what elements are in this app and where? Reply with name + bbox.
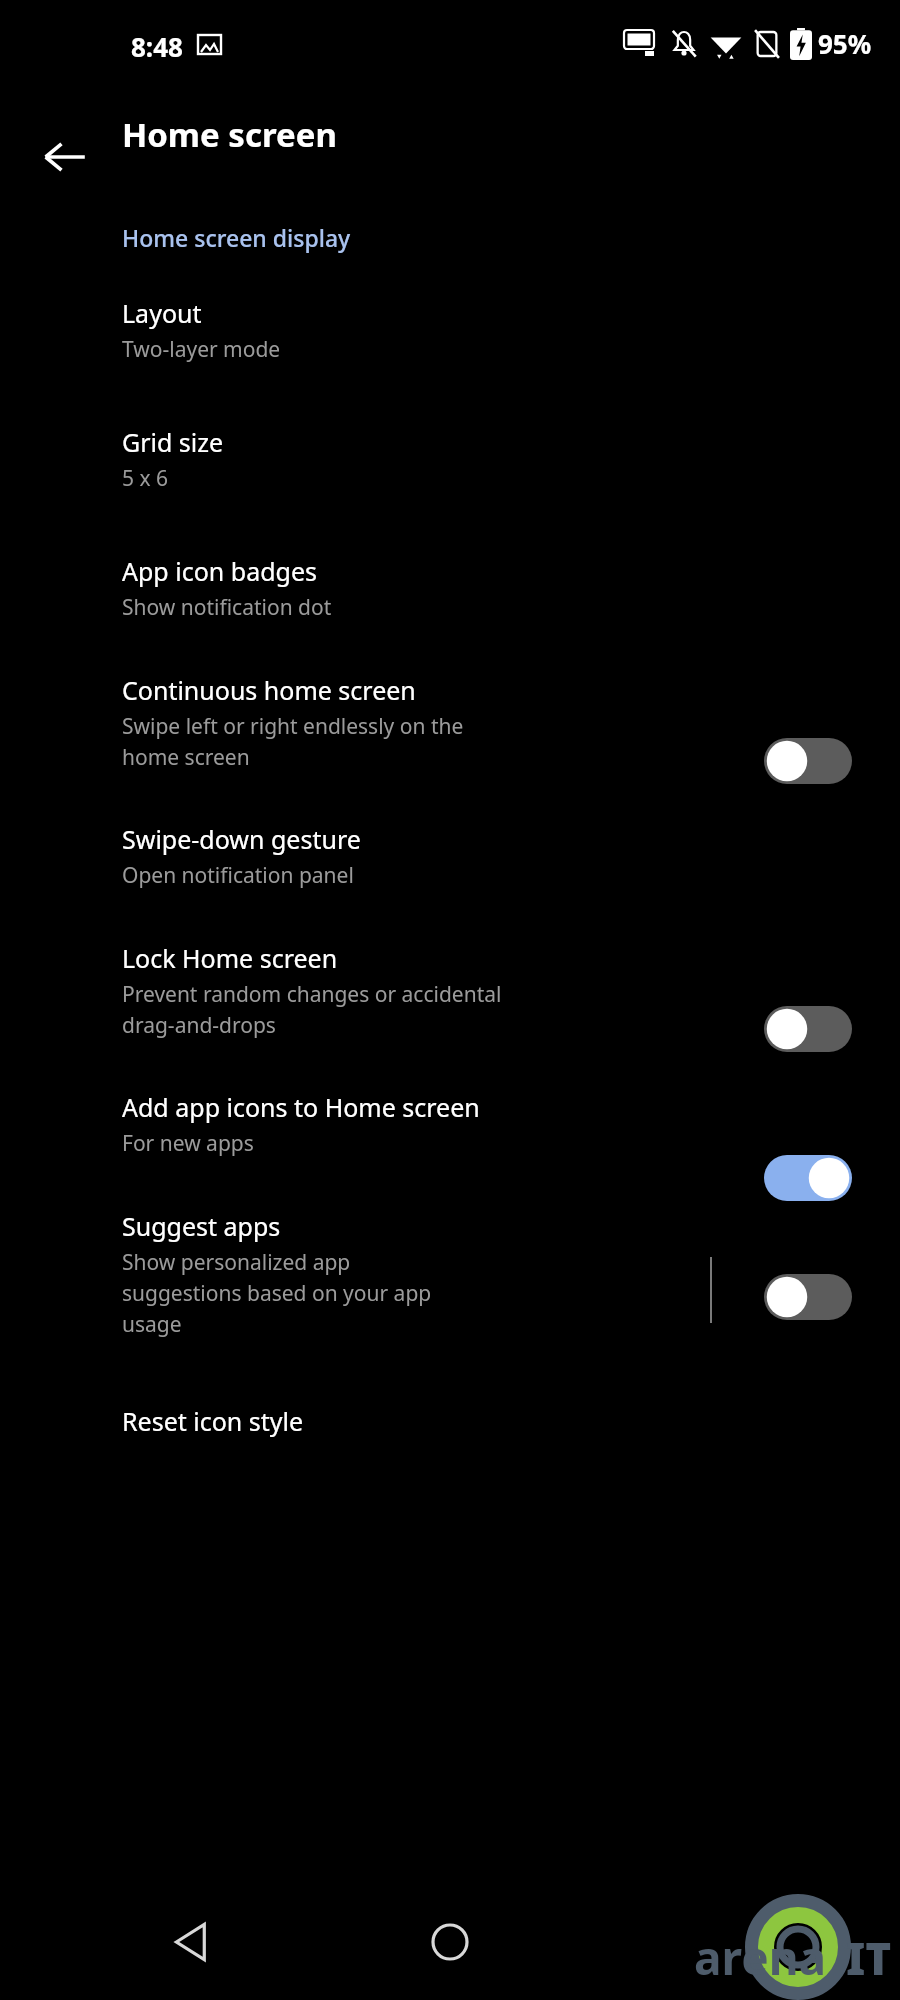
button[interactable]: Continuous home screen: [0, 673, 900, 823]
staticText: Home screen: [122, 112, 337, 157]
staticText: Lock Home screen: [122, 941, 338, 975]
staticText: Two-layer mode: [122, 335, 281, 364]
button[interactable]: Layout: [0, 296, 900, 409]
button[interactable]: On: [752, 1150, 864, 1206]
staticText: Open notification panel: [122, 861, 354, 890]
button[interactable]: Off: [752, 1001, 864, 1057]
staticText: Prevent random changes or accidental dra…: [122, 980, 502, 1039]
staticText: Grid size: [122, 425, 224, 459]
staticText: arena: [694, 1926, 827, 1989]
staticText: Swipe-down gesture: [122, 822, 361, 856]
staticText: 5 x 6: [122, 464, 169, 493]
staticText: Layout: [122, 296, 202, 330]
button[interactable]: Off: [752, 733, 864, 789]
button[interactable]: Add app icons to Home screen: [0, 1090, 900, 1203]
staticText: Add app icons to Home screen: [122, 1090, 480, 1124]
staticText: Reset icon style: [122, 1404, 304, 1438]
button[interactable]: Off: [752, 1269, 864, 1325]
button[interactable]: Back: [22, 114, 108, 200]
button[interactable]: Reset icon style: [0, 1404, 900, 1480]
button[interactable]: App icon badges: [0, 554, 900, 667]
staticText: App icon badges: [122, 554, 317, 588]
staticText: For new apps: [122, 1129, 254, 1158]
staticText: Home screen display: [122, 222, 351, 253]
button[interactable]: Grid size: [0, 425, 900, 538]
staticText: Suggest apps: [122, 1209, 281, 1243]
button[interactable]: Suggest apps: [0, 1209, 900, 1396]
staticText: IT: [846, 1928, 892, 1988]
button[interactable]: Home: [408, 1900, 492, 1984]
button[interactable]: Lock Home screen: [0, 941, 900, 1091]
staticText: 95%: [818, 26, 872, 61]
staticText: 8:48: [131, 29, 183, 64]
staticText: Show personalized app suggestions based …: [122, 1248, 432, 1338]
staticText: Swipe left or right endlessly on the hom…: [122, 712, 464, 771]
button[interactable]: Swipe-down gesture: [0, 822, 900, 935]
button[interactable]: Back: [148, 1900, 232, 1984]
staticText: Show notification dot: [122, 593, 332, 622]
staticText: Continuous home screen: [122, 673, 416, 707]
